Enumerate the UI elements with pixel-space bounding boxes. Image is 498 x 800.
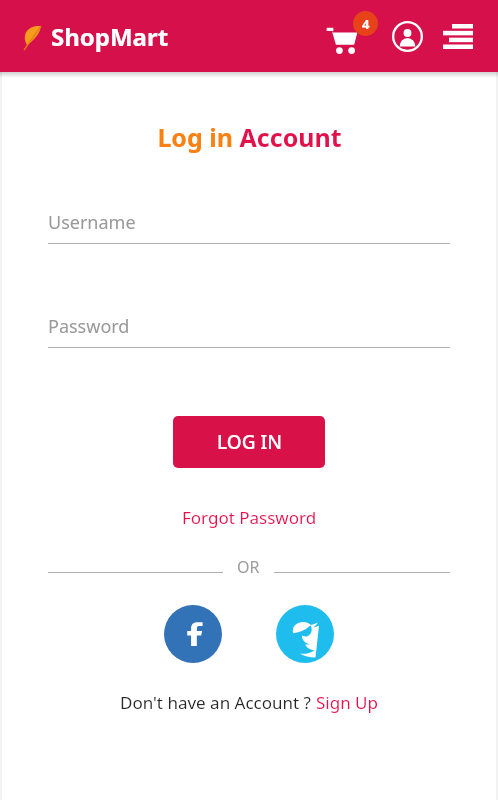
button[interactable]: LOG IN: [173, 416, 325, 468]
staticText: Forgot Password: [182, 506, 317, 529]
button[interactable]: ShopMart: [22, 20, 169, 53]
staticText: Log in Account: [157, 120, 342, 154]
button[interactable]: Sign in with Facebook: [164, 605, 222, 663]
button[interactable]: Password: [48, 314, 450, 348]
staticText: Username: [48, 210, 136, 235]
button[interactable]: Cart, 4 items: [322, 11, 378, 61]
staticText: Password: [48, 314, 130, 339]
button[interactable]: Menu: [434, 12, 482, 60]
staticText: Don't have an Account ?: [120, 691, 316, 714]
button[interactable]: Sign Up: [316, 691, 378, 714]
staticText: LOG IN: [217, 429, 282, 455]
staticText: Sign Up: [316, 691, 378, 714]
button[interactable]: Forgot Password: [176, 504, 323, 531]
staticText: 4: [362, 15, 370, 33]
button[interactable]: Account: [384, 13, 430, 59]
staticText: OR: [237, 556, 260, 578]
button[interactable]: Sign in with Twitter: [276, 605, 334, 663]
staticText: ShopMart: [51, 20, 169, 53]
button[interactable]: Username: [48, 210, 450, 244]
